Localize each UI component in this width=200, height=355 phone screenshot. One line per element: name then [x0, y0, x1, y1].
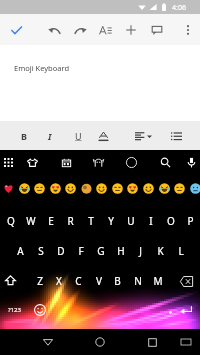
button[interactable]: Back: [37, 331, 59, 353]
button[interactable]: List: [165, 125, 187, 147]
button[interactable]: A: [11, 237, 30, 265]
staticText: H: [117, 244, 125, 258]
button[interactable]: Redo: [68, 18, 92, 42]
button[interactable]: Grinning face with big eyes: [141, 181, 156, 196]
staticText: A: [17, 244, 24, 258]
staticText: Q: [7, 214, 15, 228]
button[interactable]: Q: [1, 207, 20, 235]
staticText: B: [21, 130, 27, 142]
button[interactable]: K: [151, 237, 170, 265]
button[interactable]: Heart: [1, 181, 16, 196]
staticText: S: [38, 244, 44, 258]
button[interactable]: Face blowing a kiss: [125, 181, 140, 196]
staticText: X: [56, 274, 62, 288]
button[interactable]: W: [21, 207, 40, 235]
button[interactable]: L: [171, 237, 190, 265]
staticText: Emoji Keyboard: [14, 63, 70, 73]
button[interactable]: Enter: [176, 300, 196, 320]
staticText: U: [127, 214, 135, 228]
button[interactable]: G: [91, 237, 110, 265]
button[interactable]: T: [81, 207, 100, 235]
staticText: J: [139, 244, 142, 258]
button[interactable]: Alignment: [129, 125, 151, 147]
button[interactable]: Home: [89, 331, 111, 353]
button[interactable]: Smirking face: [110, 181, 125, 196]
button[interactable]: GIF: [121, 152, 141, 172]
staticText: V: [96, 274, 102, 288]
staticText: F: [78, 244, 84, 258]
button[interactable]: Objects: [22, 152, 42, 172]
button[interactable]: O: [161, 207, 180, 235]
staticText: L: [178, 244, 184, 258]
button[interactable]: Places: [56, 152, 76, 172]
button[interactable]: ?123: [2, 300, 26, 320]
staticText: W: [26, 214, 36, 228]
button[interactable]: Search: [155, 152, 175, 172]
button[interactable]: Recents: [141, 331, 163, 353]
button[interactable]: Text formatting: [93, 18, 117, 42]
staticText: I: [48, 130, 52, 142]
staticText: E: [48, 214, 54, 228]
staticText: T: [88, 214, 94, 228]
staticText: R: [67, 214, 74, 228]
staticText: B: [114, 274, 121, 288]
button[interactable]: D: [51, 237, 70, 265]
button[interactable]: F: [71, 237, 90, 265]
button[interactable]: Laughing face: [157, 181, 172, 196]
button[interactable]: Grinning face: [94, 181, 109, 196]
button[interactable]: More options: [177, 19, 199, 41]
button[interactable]: Insert: [119, 18, 143, 42]
button[interactable]: Weary face: [172, 181, 187, 196]
button[interactable]: Z: [30, 267, 49, 295]
button[interactable]: I: [141, 207, 160, 235]
staticText: C: [75, 274, 82, 288]
staticText: M: [153, 274, 163, 288]
button[interactable]: Switch keyboard: [176, 332, 196, 352]
button[interactable]: J: [131, 237, 150, 265]
button[interactable]: Period: [161, 301, 179, 319]
button[interactable]: Relieved face: [32, 181, 47, 196]
button[interactable]: Undo: [42, 18, 66, 42]
button[interactable]: C: [69, 267, 88, 295]
button[interactable]: N: [128, 267, 147, 295]
button[interactable]: U: [121, 207, 140, 235]
button[interactable]: Smiling face with heart eyes: [48, 181, 63, 196]
staticText: N: [134, 274, 142, 288]
button[interactable]: P: [181, 207, 200, 235]
staticText: Z: [37, 274, 43, 288]
button[interactable]: R: [61, 207, 80, 235]
staticText: 4:06: [172, 3, 186, 13]
button[interactable]: Emoji: [30, 300, 50, 320]
button[interactable]: Voice input: [182, 153, 200, 171]
button[interactable]: Face with tears of joy: [17, 181, 32, 196]
button[interactable]: S: [31, 237, 50, 265]
staticText: I: [149, 214, 153, 228]
button[interactable]: Smiling face: [63, 181, 78, 196]
button[interactable]: Italic: [39, 125, 61, 147]
staticText: O: [167, 214, 175, 228]
button[interactable]: M: [148, 267, 167, 295]
button[interactable]: H: [111, 237, 130, 265]
button[interactable]: Underline: [67, 125, 89, 147]
button[interactable]: Shift: [1, 271, 20, 290]
staticText: G: [97, 244, 105, 258]
button[interactable]: Ok hand: [79, 181, 94, 196]
button[interactable]: X: [49, 267, 68, 295]
staticText: U: [75, 130, 82, 142]
button[interactable]: Cold face: [188, 181, 200, 196]
button[interactable]: E: [41, 207, 60, 235]
button[interactable]: V: [89, 267, 108, 295]
button[interactable]: Y: [101, 207, 120, 235]
button[interactable]: Animals: [88, 152, 108, 172]
button[interactable]: Backspace: [175, 270, 197, 292]
staticText: P: [187, 214, 194, 228]
button[interactable]: Done: [4, 18, 28, 42]
staticText: Y: [108, 214, 114, 228]
button[interactable]: Comment: [145, 18, 169, 42]
button[interactable]: Recent: [0, 153, 17, 171]
staticText: K: [157, 244, 164, 258]
button[interactable]: Bold: [13, 125, 35, 147]
button[interactable]: Space: [52, 302, 164, 318]
button[interactable]: Text color: [92, 125, 114, 147]
button[interactable]: B: [108, 267, 127, 295]
